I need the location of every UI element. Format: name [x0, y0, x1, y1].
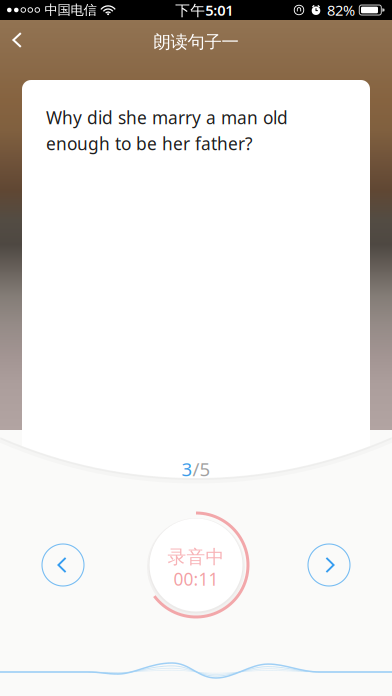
staticText: Why did she marry a man old enough to be…	[46, 106, 288, 155]
staticText: 录音中	[167, 545, 224, 568]
staticText: 朗读句子一	[153, 31, 238, 53]
staticText: 82%	[327, 0, 355, 20]
staticText: 3	[181, 457, 192, 481]
staticText: 下午5:01	[175, 0, 233, 20]
staticText: /5	[192, 457, 210, 481]
staticText: 中国电信	[45, 2, 97, 18]
staticText: 00:11	[173, 567, 218, 590]
button[interactable]: Previous sentence	[40, 542, 86, 588]
button[interactable]: Recording, 00:11	[141, 510, 251, 620]
button[interactable]: Back	[0, 23, 36, 61]
button[interactable]: Next sentence	[306, 542, 352, 588]
